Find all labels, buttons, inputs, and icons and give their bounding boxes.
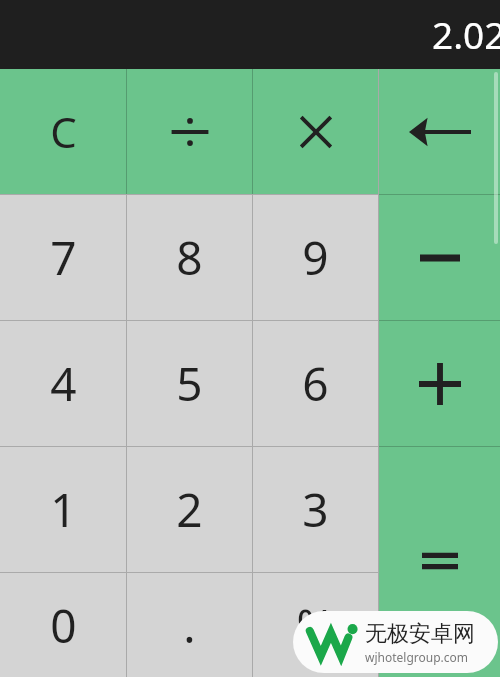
staticText: 0 bbox=[50, 594, 77, 657]
staticText: 无极安卓网 bbox=[365, 620, 475, 648]
button[interactable]: 0 bbox=[0, 573, 126, 677]
staticText: 2 bbox=[176, 478, 203, 541]
button[interactable]: 4 bbox=[0, 321, 126, 446]
staticText: 6 bbox=[302, 352, 329, 415]
button[interactable]: 3 bbox=[253, 447, 378, 572]
staticText: 4 bbox=[50, 352, 77, 415]
staticText: 2.02 bbox=[432, 9, 500, 59]
staticText: 3 bbox=[302, 478, 329, 541]
button[interactable]: Clear bbox=[0, 69, 126, 194]
staticText: 7 bbox=[50, 226, 77, 289]
button[interactable]: 7 bbox=[0, 195, 126, 320]
button[interactable]: Backspace bbox=[379, 69, 500, 194]
button[interactable]: Minus bbox=[379, 195, 500, 320]
staticText: % bbox=[296, 594, 335, 657]
button[interactable]: % bbox=[253, 573, 378, 677]
button[interactable]: 9 bbox=[253, 195, 378, 320]
button[interactable]: 8 bbox=[127, 195, 252, 320]
staticText: C bbox=[50, 103, 77, 160]
button[interactable]: 2 bbox=[127, 447, 252, 572]
staticText: wjhotelgroup.com bbox=[365, 649, 469, 665]
button[interactable]: 5 bbox=[127, 321, 252, 446]
staticText: 8 bbox=[176, 226, 203, 289]
staticText: . bbox=[183, 594, 196, 657]
button[interactable]: 1 bbox=[0, 447, 126, 572]
staticText: 1 bbox=[50, 478, 77, 541]
button[interactable]: Divide bbox=[127, 69, 252, 194]
button[interactable]: . bbox=[127, 573, 252, 677]
button[interactable]: Equals bbox=[379, 447, 500, 677]
button[interactable]: Plus bbox=[379, 321, 500, 446]
staticText: 9 bbox=[302, 226, 329, 289]
button[interactable]: Multiply bbox=[253, 69, 378, 194]
staticText: 5 bbox=[176, 352, 203, 415]
button[interactable]: 6 bbox=[253, 321, 378, 446]
